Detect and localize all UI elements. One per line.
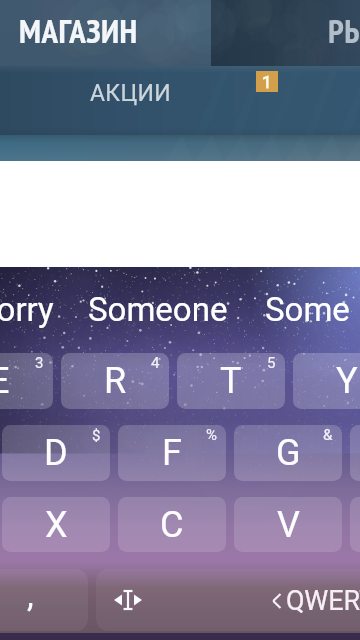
staticText: X [45, 504, 68, 546]
staticText: Y [336, 360, 358, 402]
staticText: E [0, 360, 10, 402]
staticText: QWERTY [286, 585, 360, 617]
button[interactable]: Some [265, 290, 350, 329]
button[interactable]: X [2, 497, 110, 552]
button[interactable]: Someone [88, 290, 228, 329]
staticText: T [220, 360, 242, 402]
button[interactable]: E [0, 353, 53, 409]
staticText: МАГАЗИН [19, 9, 138, 52]
staticText: 1 [262, 72, 272, 92]
button[interactable]: H [350, 425, 360, 481]
button[interactable]: Space [96, 569, 360, 631]
staticText: V [277, 504, 300, 546]
button[interactable]: Sorry [0, 290, 54, 329]
staticText: 5 [267, 354, 276, 372]
staticText: C [160, 504, 184, 546]
staticText: G [276, 432, 301, 474]
button[interactable]: МАГАЗИН [0, 0, 211, 66]
button[interactable]: Y [293, 353, 360, 409]
staticText: , [27, 575, 34, 615]
staticText: 4 [151, 354, 160, 372]
button[interactable]: РЫНОК [211, 0, 360, 66]
button[interactable]: T [177, 353, 285, 409]
staticText: 3 [35, 354, 44, 372]
staticText: F [162, 432, 182, 474]
button[interactable]: Comma [0, 569, 88, 631]
button[interactable]: F [118, 425, 226, 481]
staticText: & [323, 426, 333, 444]
staticText: % [206, 426, 217, 444]
button[interactable]: V [234, 497, 342, 552]
button[interactable]: АКЦИИ [0, 66, 360, 135]
button[interactable]: B [350, 497, 360, 552]
button[interactable]: R [61, 353, 169, 409]
staticText: R [104, 360, 127, 402]
button[interactable]: G [234, 425, 342, 481]
button[interactable]: D [2, 425, 110, 481]
staticText: АКЦИИ [90, 80, 171, 107]
staticText: $ [92, 426, 101, 444]
staticText: РЫНОК [328, 9, 360, 52]
staticText: D [44, 432, 68, 474]
button[interactable]: C [118, 497, 226, 552]
